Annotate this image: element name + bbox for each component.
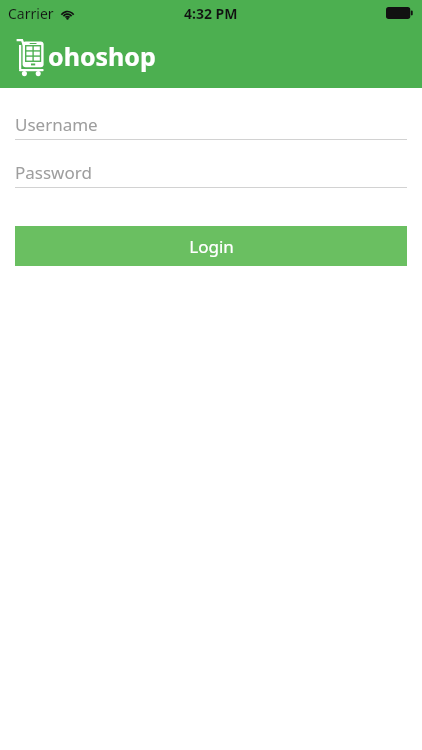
staticText: ohoshop bbox=[48, 39, 156, 73]
other: ohoshop logo bbox=[16, 37, 46, 77]
staticText: 4:32 PM bbox=[184, 4, 238, 23]
button[interactable]: Password bbox=[15, 158, 407, 188]
button[interactable]: Login bbox=[15, 226, 407, 266]
staticText: Carrier bbox=[8, 4, 54, 23]
staticText: Username bbox=[15, 113, 98, 136]
button[interactable]: Username bbox=[15, 110, 407, 140]
staticText: Login bbox=[189, 235, 234, 258]
staticText: Password bbox=[15, 161, 92, 184]
